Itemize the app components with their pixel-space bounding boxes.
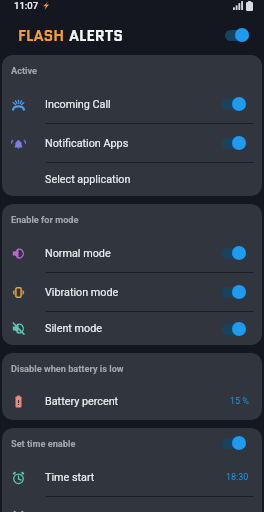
staticText: Disable when battery is low bbox=[11, 363, 124, 374]
staticText: Vibration mode bbox=[45, 286, 119, 299]
staticText: Active bbox=[11, 65, 38, 76]
staticText: Incoming Call bbox=[45, 98, 111, 111]
button[interactable]: Toggle bbox=[225, 28, 249, 42]
button[interactable]: Time start bbox=[2, 458, 262, 496]
button[interactable]: Battery percent bbox=[2, 383, 262, 420]
staticText: ALERTS bbox=[69, 25, 124, 46]
button[interactable]: Toggle bbox=[222, 97, 246, 111]
staticText: 11:07 bbox=[14, 0, 39, 11]
staticText: FLASH bbox=[18, 25, 65, 46]
staticText: Set time enable bbox=[11, 438, 76, 449]
staticText: Normal mode bbox=[45, 247, 111, 260]
button[interactable]: Toggle bbox=[222, 285, 246, 299]
button[interactable]: Toggle bbox=[222, 136, 246, 150]
button[interactable]: Toggle bbox=[222, 322, 246, 336]
button[interactable]: Silent mode bbox=[2, 312, 262, 345]
staticText: Enable for mode bbox=[11, 214, 79, 225]
button[interactable]: Normal mode bbox=[2, 234, 262, 272]
staticText: 18:30 bbox=[226, 472, 249, 483]
button[interactable]: Select application bbox=[2, 163, 262, 196]
staticText: Select application bbox=[45, 173, 131, 186]
button[interactable]: Time end bbox=[2, 497, 262, 512]
button[interactable]: Incoming Call bbox=[2, 85, 262, 123]
button[interactable]: Toggle bbox=[222, 436, 246, 450]
staticText: Silent mode bbox=[45, 322, 102, 335]
staticText: 15 % bbox=[230, 396, 249, 407]
staticText: Battery percent bbox=[45, 395, 119, 408]
button[interactable]: Toggle bbox=[222, 246, 246, 260]
staticText: Time start bbox=[45, 471, 95, 484]
button[interactable]: Notification Apps bbox=[2, 124, 262, 162]
button[interactable]: Vibration mode bbox=[2, 273, 262, 311]
staticText: Notification Apps bbox=[45, 137, 129, 150]
